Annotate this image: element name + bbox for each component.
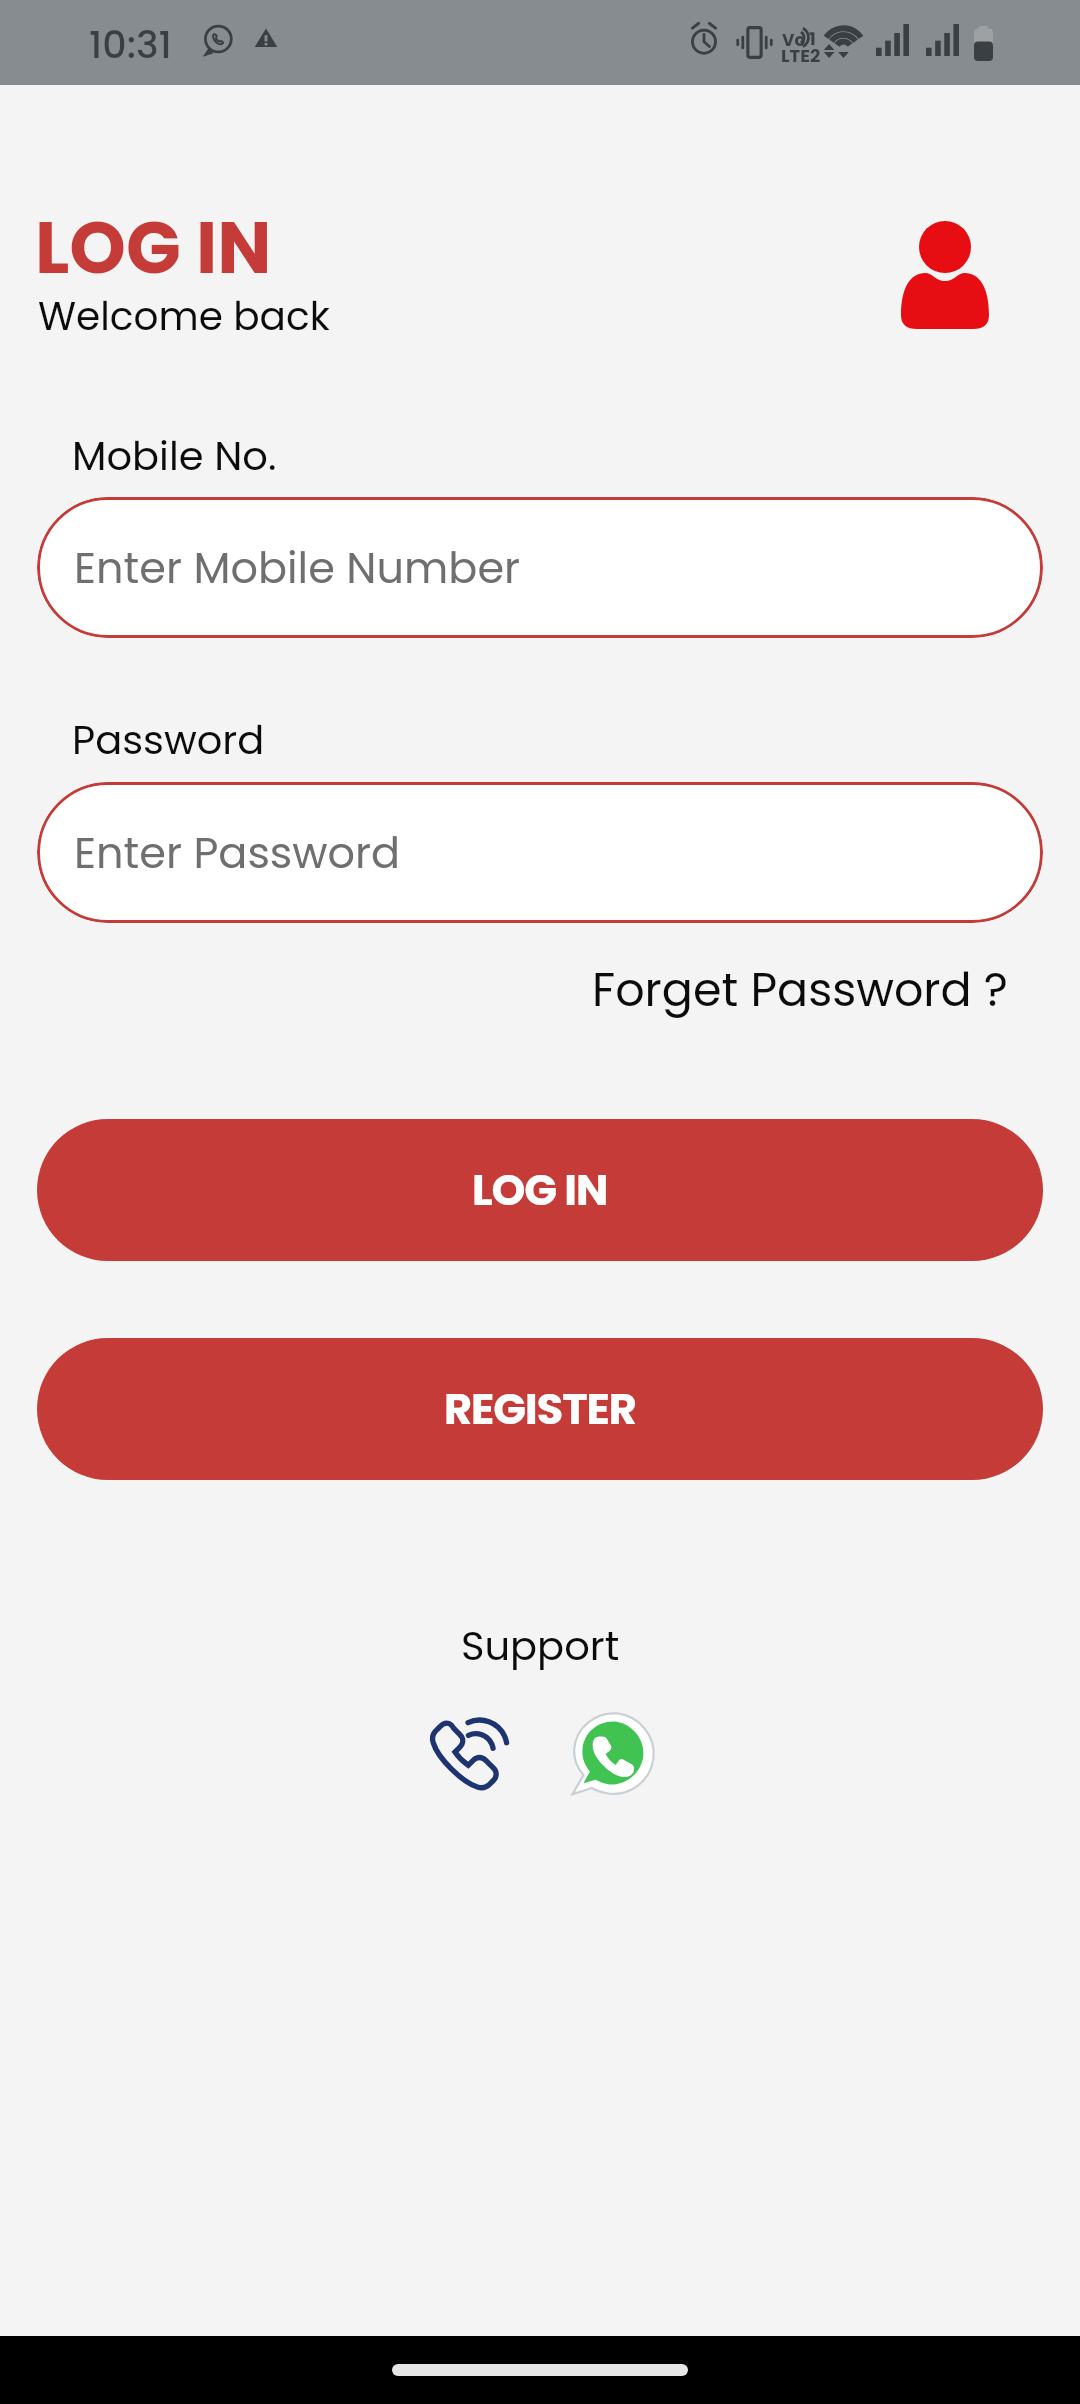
staticText: Enter Password	[74, 823, 401, 883]
staticText: 10:31	[89, 18, 172, 71]
staticText: Vo	[782, 28, 806, 52]
staticText: Forget Password ?	[592, 958, 1008, 1022]
staticText: Mobile No.	[72, 428, 277, 484]
button[interactable]: LOG IN	[37, 1119, 1043, 1261]
staticText: 1	[809, 26, 816, 51]
button[interactable]: Profile	[895, 215, 995, 335]
button[interactable]: Call support	[431, 1714, 507, 1790]
button[interactable]: Forget Password ?	[582, 942, 1018, 1038]
staticText: Enter Mobile Number	[74, 538, 521, 598]
button[interactable]: Enter Mobile Number	[37, 497, 1043, 638]
staticText: Welcome back	[38, 289, 330, 344]
button[interactable]: REGISTER	[37, 1338, 1043, 1480]
button[interactable]: WhatsApp support	[566, 1707, 658, 1799]
staticText: Support	[461, 1618, 620, 1674]
staticText: Password	[72, 712, 265, 768]
button[interactable]: Enter Password	[37, 782, 1043, 923]
staticText: LOG IN	[472, 1160, 608, 1220]
staticText: LTE2	[781, 43, 821, 68]
staticText: REGISTER	[444, 1379, 636, 1439]
staticText: LOG IN	[35, 197, 272, 298]
